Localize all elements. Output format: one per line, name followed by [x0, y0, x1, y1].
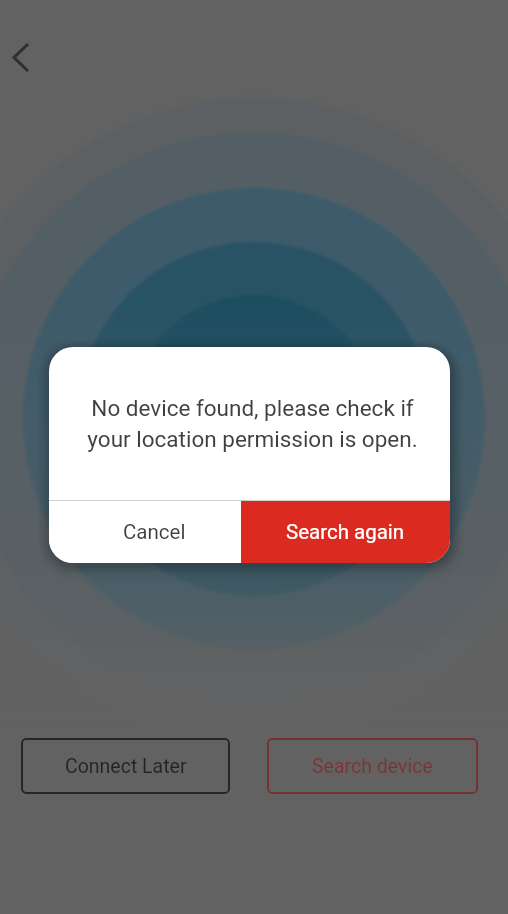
staticText: Search device	[312, 755, 433, 778]
staticText: Search again	[286, 520, 405, 544]
button[interactable]: Cancel	[49, 501, 241, 563]
button[interactable]	[0, 34, 46, 80]
button[interactable]: Search device	[267, 738, 478, 794]
button[interactable]: Search again	[241, 501, 450, 563]
staticText: No device found, please check if your lo…	[87, 395, 418, 452]
staticText: Cancel	[123, 520, 186, 544]
button[interactable]: Connect Later	[21, 738, 230, 794]
staticText: Connect Later	[65, 755, 187, 778]
